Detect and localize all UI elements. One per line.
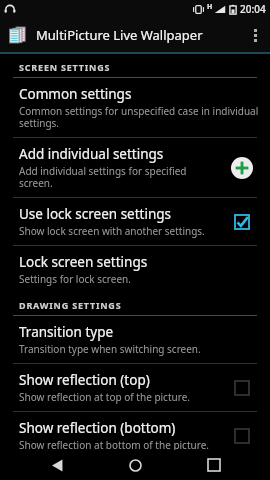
staticText: Transition type when switching screen. [19, 342, 201, 356]
button[interactable]: More options [244, 18, 266, 52]
staticText: 20:04 [240, 2, 266, 16]
button[interactable]: Back [35, 450, 79, 480]
button[interactable]: Use lock screen settings [0, 198, 270, 245]
button[interactable]: Recent apps [192, 450, 236, 480]
button[interactable]: Add individual settings [0, 138, 270, 197]
staticText: Settings for lock screen. [19, 272, 131, 286]
button[interactable]: Add individual settings [231, 157, 253, 179]
staticText: MultiPicture Live Wallpaper [36, 26, 244, 44]
staticText: Add individual settings for specified sc… [19, 164, 216, 190]
staticText: SCREEN SETTINGS [19, 61, 111, 73]
staticText: DRAWING SETTINGS [19, 299, 122, 311]
staticText: Show lock screen with another settings. [19, 224, 205, 238]
button[interactable]: Lock screen settings [0, 246, 270, 293]
staticText: Show reflection at bottom of the picture… [19, 438, 209, 452]
staticText: Show reflection (bottom) [19, 419, 176, 437]
button[interactable]: Unchecked [232, 378, 252, 398]
button[interactable]: Unchecked [232, 426, 252, 446]
staticText: Common settings [19, 85, 132, 103]
staticText: Add individual settings [19, 145, 164, 163]
staticText: Transition type [19, 323, 114, 341]
button[interactable]: Transition type [0, 316, 270, 363]
staticText: H [207, 2, 213, 12]
button[interactable]: Show reflection (bottom) [0, 412, 270, 459]
staticText: Show reflection at top of the picture. [19, 390, 190, 404]
staticText: Use lock screen settings [19, 205, 172, 223]
button[interactable]: Show reflection (top) [0, 364, 270, 411]
staticText: Lock screen settings [19, 253, 148, 271]
button[interactable]: Common settings [0, 78, 270, 137]
button[interactable]: Home [113, 450, 157, 480]
button[interactable]: Checked [232, 212, 252, 232]
staticText: Show reflection (top) [19, 371, 150, 389]
staticText: Common settings for unspecified case in … [19, 104, 260, 130]
